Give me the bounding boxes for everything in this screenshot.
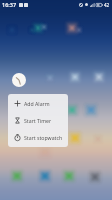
staticText: Start Timer — [24, 117, 52, 124]
button[interactable]: Start stopwatch — [8, 129, 68, 146]
button[interactable]: Clock — [12, 73, 26, 87]
staticText: 16:37 — [2, 1, 17, 8]
button[interactable]: Add Alarm — [8, 95, 68, 112]
staticText: Start stopwatch — [24, 134, 63, 141]
button[interactable]: Start Timer — [8, 112, 68, 129]
staticText: 42 — [104, 2, 110, 8]
staticText: Add Alarm — [24, 100, 50, 107]
